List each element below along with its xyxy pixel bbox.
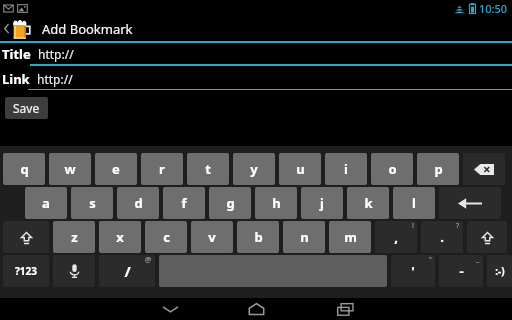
button[interactable]: x: [99, 221, 141, 253]
button[interactable]: d: [117, 187, 159, 219]
staticText: p: [434, 160, 443, 178]
staticText: j: [320, 194, 324, 212]
staticText: e: [112, 160, 120, 178]
staticText: c: [163, 228, 170, 246]
button[interactable]: s: [71, 187, 113, 219]
staticText: Title: [2, 45, 31, 63]
button[interactable]: g: [209, 187, 251, 219]
staticText: @: [145, 255, 152, 265]
staticText: x: [116, 228, 124, 246]
button[interactable]: j: [301, 187, 343, 219]
staticText: :-): [495, 264, 505, 278]
staticText: /: [124, 261, 131, 281]
button[interactable]: i: [325, 153, 367, 185]
staticText: .: [440, 228, 444, 246]
button[interactable]: y: [233, 153, 275, 185]
button[interactable]: q: [3, 153, 45, 185]
staticText: ?123: [15, 264, 37, 278]
staticText: a: [42, 194, 50, 212]
staticText: ': [411, 262, 415, 280]
staticText: ,: [394, 228, 398, 246]
button[interactable]: Save: [5, 97, 48, 119]
button[interactable]: ,: [375, 221, 417, 253]
button[interactable]: Shift: [3, 221, 49, 253]
button[interactable]: v: [191, 221, 233, 253]
button[interactable]: /: [99, 255, 155, 287]
button[interactable]: t: [187, 153, 229, 185]
staticText: w: [64, 160, 76, 178]
button[interactable]: l: [393, 187, 435, 219]
button[interactable]: b: [237, 221, 279, 253]
staticText: q: [20, 160, 29, 178]
button[interactable]: m: [329, 221, 371, 253]
staticText: !: [412, 221, 414, 231]
staticText: t: [205, 160, 211, 178]
button[interactable]: Navigate up: Add Bookmark: [0, 16, 512, 41]
staticText: -: [459, 262, 464, 280]
button[interactable]: f: [163, 187, 205, 219]
staticText: m: [344, 228, 357, 246]
staticText: o: [388, 160, 397, 178]
staticText: l: [412, 194, 416, 212]
button[interactable]: e: [95, 153, 137, 185]
staticText: http://: [38, 46, 74, 62]
staticText: ": [429, 255, 432, 265]
button[interactable]: Hide keyboard: [152, 298, 188, 320]
button[interactable]: Enter: [439, 187, 501, 219]
staticText: h: [272, 194, 281, 212]
staticText: u: [296, 160, 305, 178]
staticText: r: [159, 160, 165, 178]
button[interactable]: a: [25, 187, 67, 219]
staticText: 10:50: [479, 1, 508, 16]
staticText: s: [89, 194, 96, 212]
button[interactable]: z: [53, 221, 95, 253]
button[interactable]: Backspace: [463, 153, 505, 185]
button[interactable]: -: [439, 255, 483, 287]
staticText: y: [250, 160, 258, 178]
staticText: ?: [456, 221, 460, 231]
staticText: v: [208, 228, 216, 246]
button[interactable]: ?123: [3, 255, 49, 287]
button[interactable]: r: [141, 153, 183, 185]
button[interactable]: Voice input: [53, 255, 95, 287]
button[interactable]: Shift: [467, 221, 507, 253]
button[interactable]: http://: [35, 46, 512, 62]
staticText: Link: [2, 70, 30, 88]
button[interactable]: h: [255, 187, 297, 219]
button[interactable]: p: [417, 153, 459, 185]
button[interactable]: .: [421, 221, 463, 253]
button[interactable]: c: [145, 221, 187, 253]
staticText: _: [476, 255, 480, 265]
button[interactable]: k: [347, 187, 389, 219]
staticText: f: [181, 194, 187, 212]
staticText: i: [344, 160, 348, 178]
button[interactable]: Home: [236, 298, 276, 320]
button[interactable]: :-): [487, 255, 512, 287]
button[interactable]: n: [283, 221, 325, 253]
button[interactable]: ': [391, 255, 435, 287]
staticText: z: [71, 228, 78, 246]
button[interactable]: Recent apps: [326, 298, 364, 320]
staticText: n: [300, 228, 309, 246]
staticText: Add Bookmark: [42, 20, 133, 38]
staticText: b: [254, 228, 263, 246]
staticText: k: [364, 194, 373, 212]
button[interactable]: w: [49, 153, 91, 185]
staticText: http://: [37, 71, 73, 87]
staticText: g: [226, 194, 235, 212]
staticText: Save: [13, 100, 40, 116]
button[interactable]: http://: [34, 71, 512, 87]
staticText: d: [134, 194, 143, 212]
button[interactable]: o: [371, 153, 413, 185]
button[interactable]: u: [279, 153, 321, 185]
